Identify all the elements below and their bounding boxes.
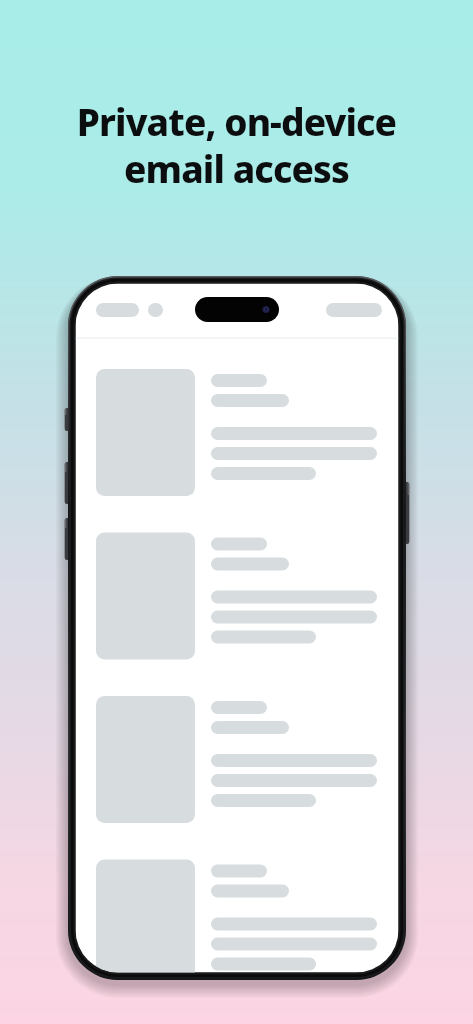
staticText: Private, on-device email access <box>18 96 455 194</box>
button[interactable]: Email inbox preview on phone <box>0 0 473 1024</box>
